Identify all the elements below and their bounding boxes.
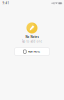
button[interactable]: New Note — [14, 48, 49, 56]
staticText: Tap to add one — [21, 40, 42, 43]
staticText: New Note — [28, 50, 41, 53]
staticText: No Notes — [25, 35, 38, 39]
staticText: 9:41 — [2, 1, 9, 5]
